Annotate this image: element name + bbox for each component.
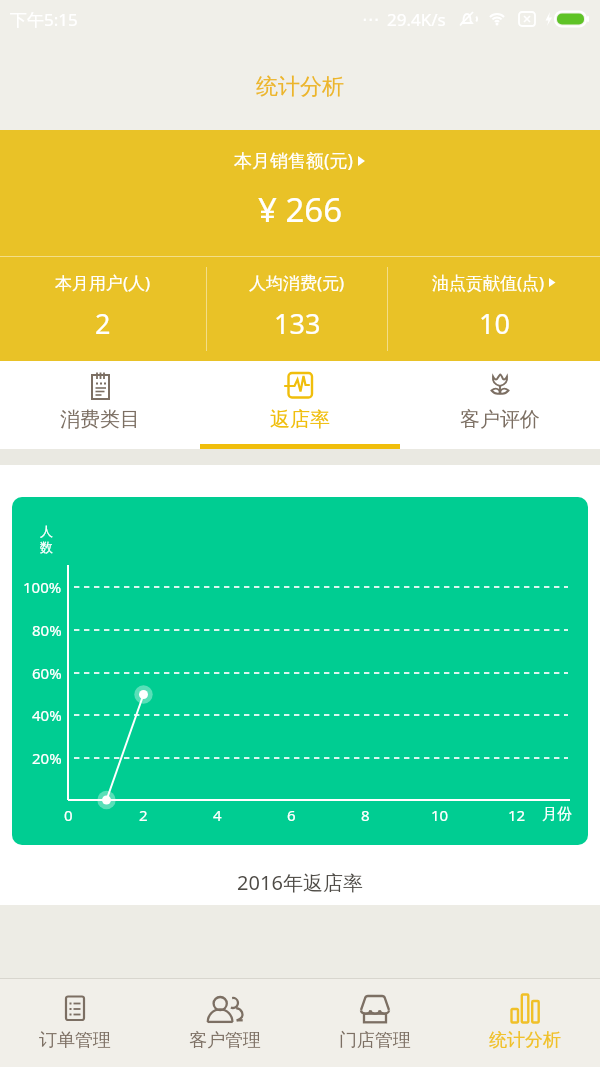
staticText: 100% (23, 577, 62, 597)
staticText: 20% (32, 748, 62, 768)
button[interactable]: 返店率 (200, 361, 400, 449)
staticText: ⋯ (362, 9, 379, 29)
staticText: 客户评价 (460, 407, 540, 432)
staticText: 统计分析 (489, 1029, 561, 1052)
staticText: 133 (274, 305, 321, 342)
staticText: 人 数 (40, 523, 53, 556)
button[interactable]: 本月销售额(元) (0, 148, 600, 173)
staticText: 客户管理 (189, 1029, 261, 1052)
staticText: 返店率 (270, 407, 330, 432)
staticText: 8 (361, 805, 370, 825)
button[interactable]: 油点贡献值(点) (388, 257, 600, 361)
button[interactable]: 客户管理 (150, 979, 300, 1067)
staticText: 60% (32, 663, 62, 683)
staticText: 下午5:15 (10, 8, 78, 31)
staticText: 消费类目 (60, 407, 140, 432)
button[interactable]: 消费类目 (0, 361, 200, 449)
staticText: 2 (139, 805, 148, 825)
staticText: 2 (95, 305, 111, 342)
staticText: 本月用户(人) (55, 271, 151, 294)
button[interactable]: 门店管理 (300, 979, 450, 1067)
staticText: 4 (213, 805, 222, 825)
staticText: 0 (64, 805, 73, 825)
button[interactable]: 订单管理 (0, 979, 150, 1067)
staticText: 人均消费(元) (249, 271, 345, 294)
staticText: 10 (479, 305, 510, 342)
staticText: 月份 (542, 805, 572, 824)
staticText: 统计分析 (256, 73, 344, 101)
staticText: 6 (287, 805, 296, 825)
button[interactable]: 人均消费(元) (207, 257, 387, 361)
staticText: ¥ 266 (0, 187, 600, 232)
staticText: 门店管理 (339, 1029, 411, 1052)
staticText: 2016年返店率 (0, 869, 600, 896)
button[interactable]: 客户评价 (400, 361, 600, 449)
staticText: 10 (431, 805, 449, 825)
button[interactable]: 统计分析 (450, 979, 600, 1067)
button[interactable]: 本月用户(人) (0, 257, 206, 361)
staticText: 80% (32, 620, 62, 640)
staticText: 订单管理 (39, 1029, 111, 1052)
staticText: 油点贡献值(点) (432, 271, 545, 294)
staticText: 12 (508, 805, 526, 825)
staticText: 40% (32, 705, 62, 725)
staticText: 29.4K/s (387, 8, 446, 31)
staticText: 本月销售额(元) (234, 148, 353, 173)
